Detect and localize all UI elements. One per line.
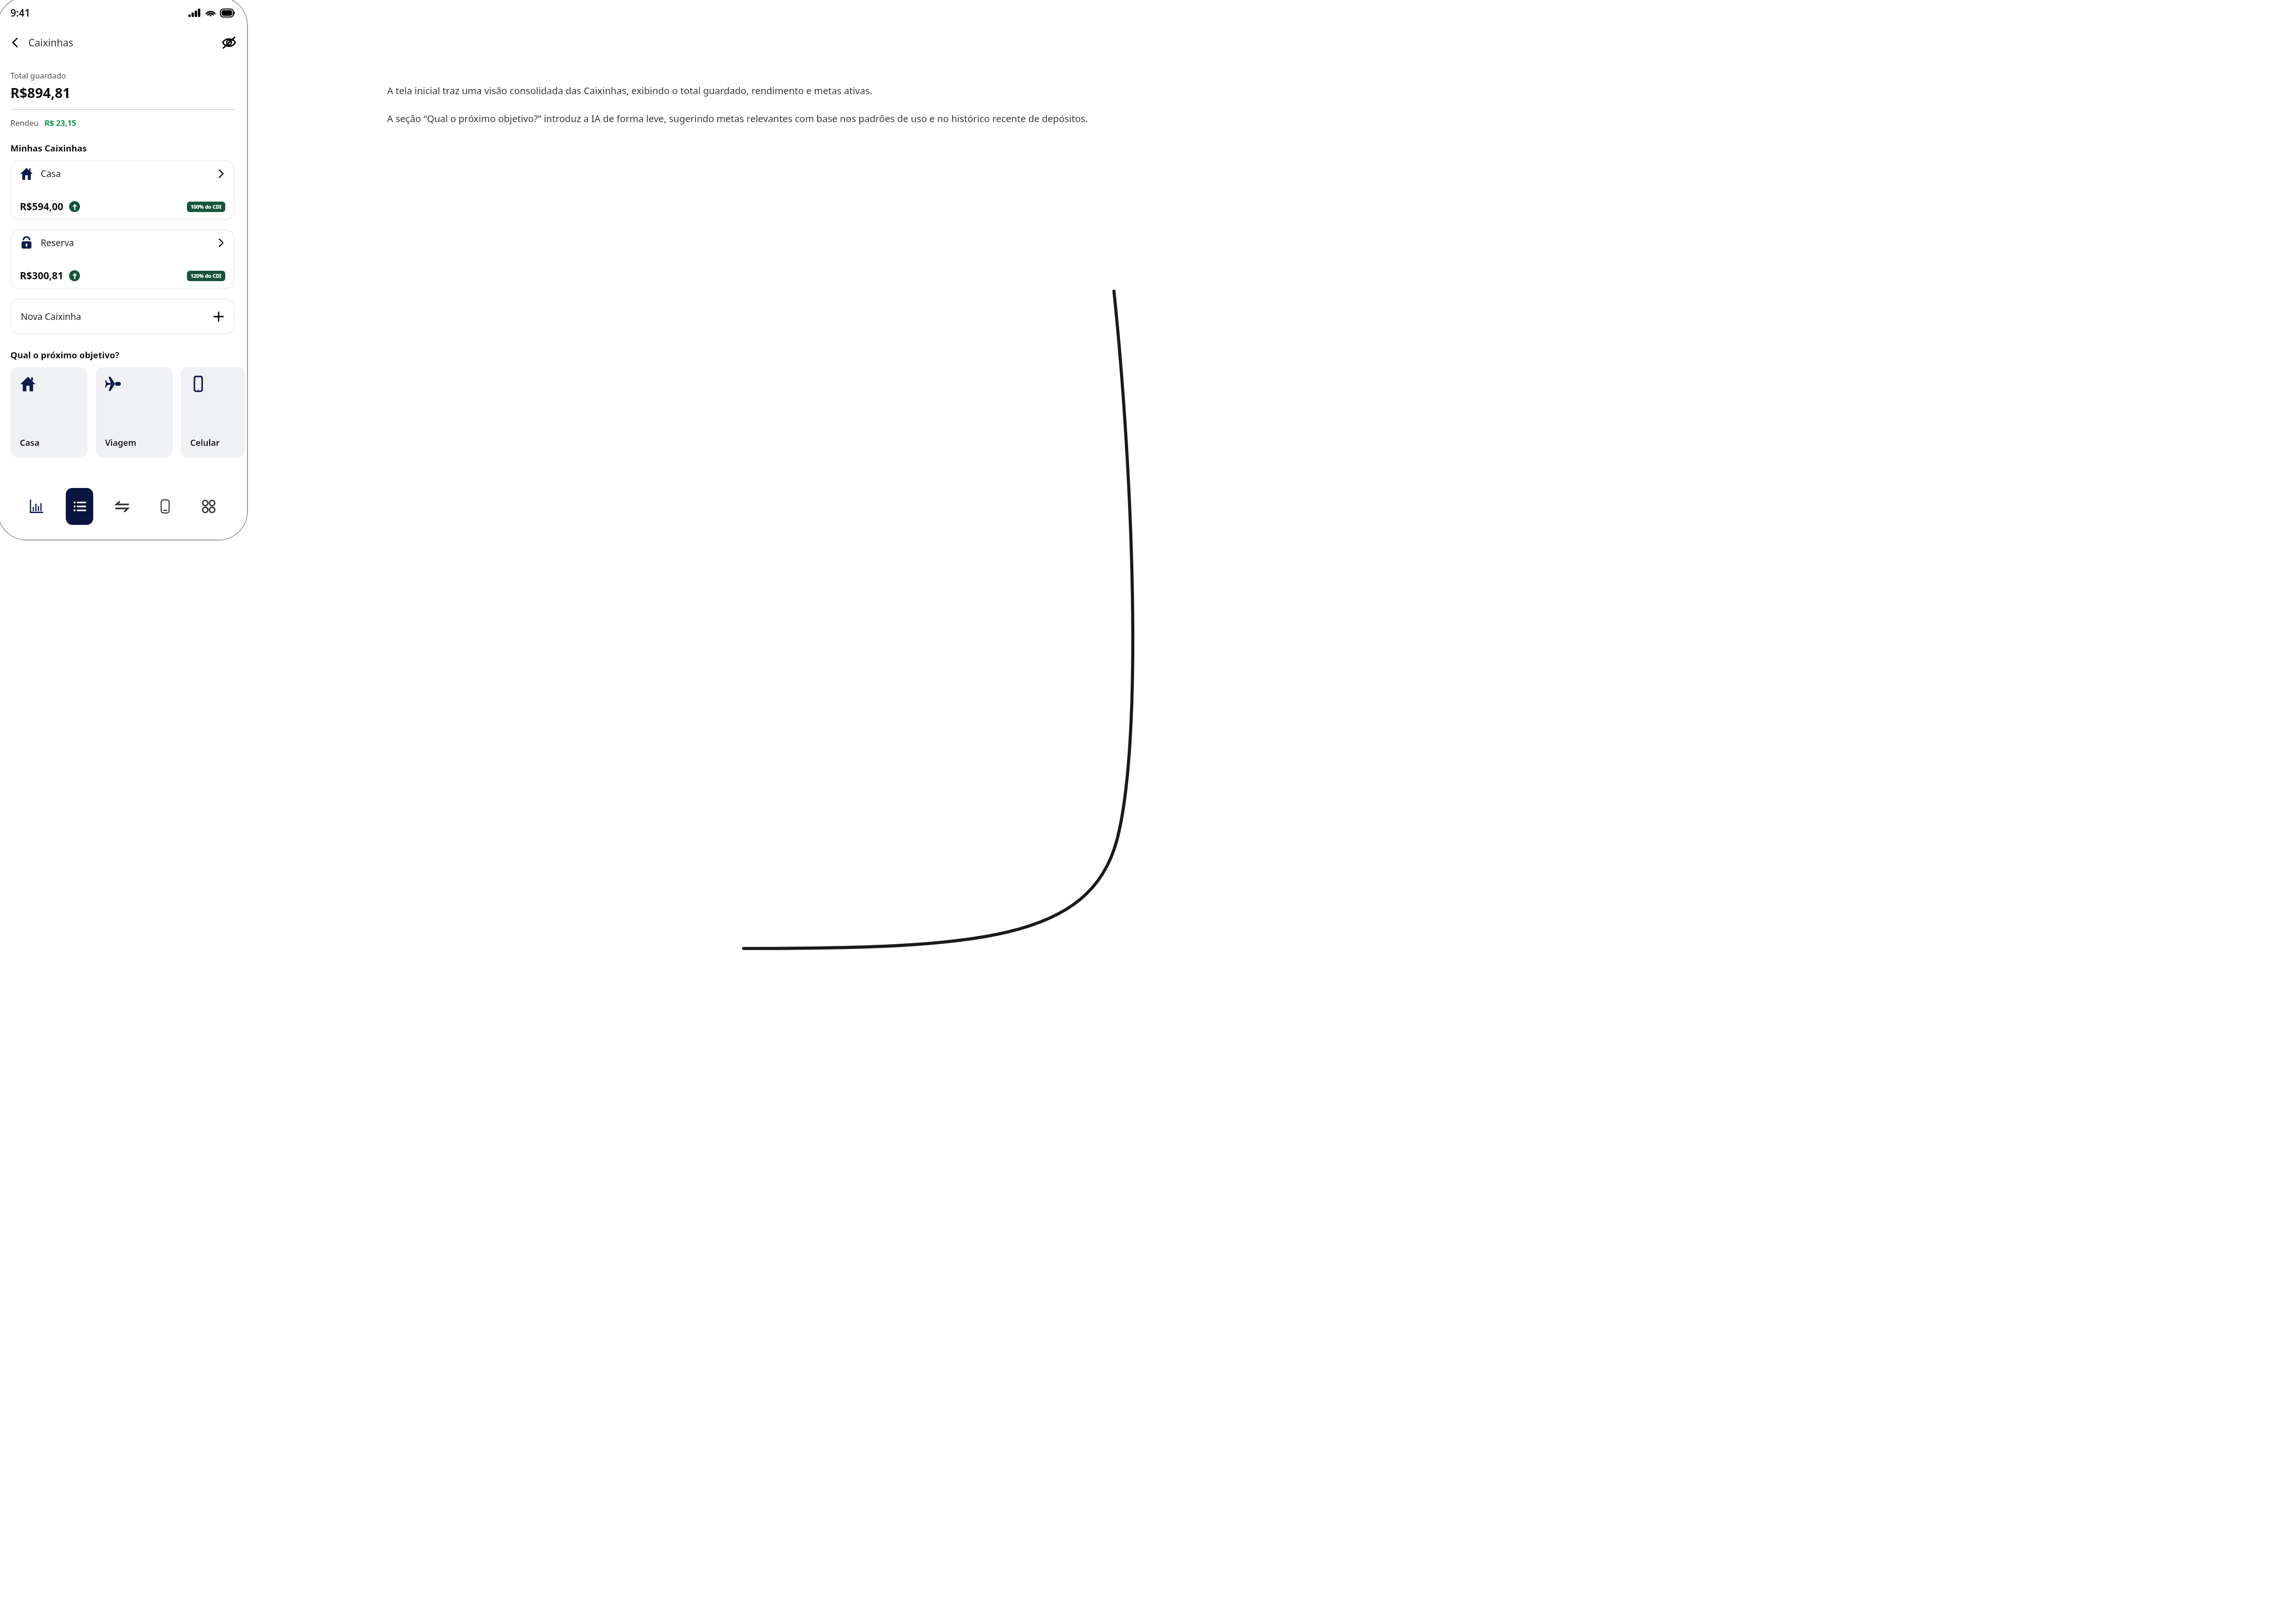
button[interactable]: Transferências bbox=[108, 492, 136, 521]
staticText: A tela inicial traz uma visão consolidad… bbox=[387, 84, 873, 97]
button[interactable]: Casa bbox=[10, 160, 235, 220]
staticText: Casa bbox=[20, 437, 40, 449]
staticText: R$594,00 bbox=[20, 200, 63, 213]
button[interactable]: Investimentos bbox=[22, 492, 51, 521]
staticText: Rendeu bbox=[10, 117, 39, 128]
staticText: 9:41 bbox=[10, 6, 30, 20]
button[interactable]: Reserva bbox=[10, 230, 235, 289]
staticText: Caixinhas bbox=[28, 36, 73, 50]
staticText: Casa bbox=[41, 168, 61, 180]
button[interactable]: Viagem bbox=[96, 367, 173, 457]
button[interactable]: Caixinhas bbox=[66, 488, 93, 525]
staticText: Viagem bbox=[105, 437, 137, 449]
staticText: 120% do CDI bbox=[191, 273, 221, 279]
staticText: 100% do CDI bbox=[191, 204, 221, 210]
button[interactable]: Casa bbox=[10, 367, 88, 457]
staticText: Celular bbox=[190, 437, 220, 449]
staticText: Qual o próximo objetivo? bbox=[10, 349, 120, 361]
staticText: R$ 23,15 bbox=[44, 117, 77, 128]
button[interactable]: Mais bbox=[194, 492, 223, 521]
button[interactable]: Ocultar saldo bbox=[218, 31, 240, 54]
staticText: Nova Caixinha bbox=[21, 310, 81, 323]
button[interactable]: Cartão bbox=[151, 492, 179, 521]
staticText: A seção “Qual o próximo objetivo?” intro… bbox=[387, 112, 1088, 125]
staticText: Reserva bbox=[41, 237, 74, 249]
staticText: Total guardado bbox=[10, 70, 66, 80]
button[interactable]: Voltar bbox=[5, 32, 26, 53]
staticText: Minhas Caixinhas bbox=[10, 142, 87, 154]
button[interactable]: Nova Caixinha bbox=[10, 299, 235, 335]
staticText: R$300,81 bbox=[20, 269, 63, 283]
staticText: R$894,81 bbox=[10, 83, 71, 102]
button[interactable]: Celular bbox=[181, 367, 245, 457]
